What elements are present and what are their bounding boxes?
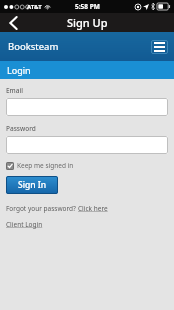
button[interactable]: Sign In <box>6 176 58 194</box>
staticText: AT&T <box>27 3 42 11</box>
button[interactable] <box>6 98 168 116</box>
staticText: Password <box>6 124 36 133</box>
staticText: Sign In <box>18 179 47 191</box>
staticText: Login <box>7 64 31 76</box>
staticText: Keep me signed in <box>17 161 74 170</box>
staticText: Email <box>6 86 24 95</box>
button[interactable]: Client Login <box>6 220 43 229</box>
staticText: Sign Up <box>67 15 108 30</box>
button[interactable]: Click here <box>78 204 108 213</box>
staticText: 5:58 PM <box>75 2 100 11</box>
button[interactable]: Booksteam <box>8 40 59 53</box>
button[interactable]: Menu <box>151 40 168 54</box>
staticText: Forgot your password? <box>6 204 78 213</box>
button[interactable] <box>6 136 168 154</box>
button[interactable]: Back <box>0 13 26 32</box>
button[interactable]: Keep me signed in <box>6 161 74 170</box>
